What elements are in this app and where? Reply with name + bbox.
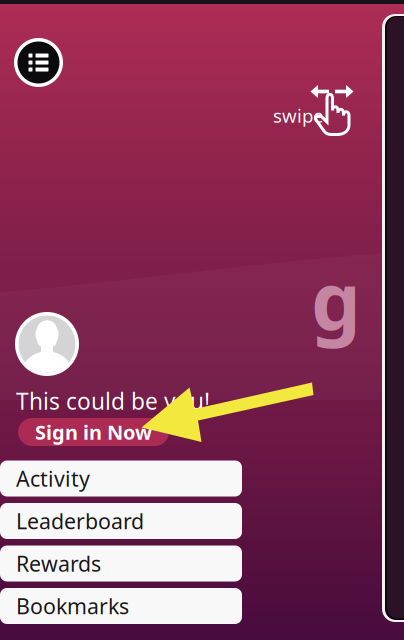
button[interactable]: Rewards: [0, 545, 242, 581]
staticText: g: [311, 247, 361, 351]
button[interactable]: Activity: [0, 460, 242, 496]
staticText: Leaderboard: [16, 507, 144, 535]
staticText: swipe: [273, 103, 324, 128]
button[interactable]: Sign in Now: [18, 418, 169, 446]
staticText: Bookmarks: [16, 592, 129, 620]
staticText: Activity: [16, 464, 90, 493]
button[interactable]: Bookmarks: [0, 588, 242, 624]
button[interactable]: Menu: [14, 38, 63, 87]
staticText: This could be you!: [16, 386, 210, 416]
staticText: Rewards: [16, 549, 101, 578]
staticText: Sign in Now: [35, 419, 152, 445]
button[interactable]: Leaderboard: [0, 503, 242, 539]
